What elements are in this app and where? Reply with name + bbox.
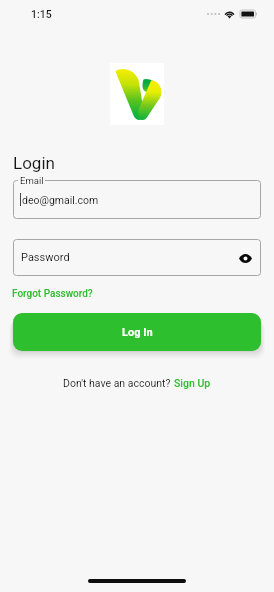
staticText: Login <box>13 153 55 173</box>
button[interactable]: Sign Up <box>174 377 211 389</box>
staticText: 1:15 <box>31 8 52 20</box>
button[interactable]: Email <box>13 180 261 219</box>
staticText: Password <box>21 251 70 264</box>
button[interactable]: Forgot Password? <box>12 288 93 300</box>
staticText: Don't have an account? <box>63 377 174 389</box>
staticText: Email <box>20 175 44 186</box>
button[interactable]: Show password <box>235 248 255 268</box>
staticText: deo@gmail.com <box>22 194 99 206</box>
staticText: Log In <box>122 326 153 339</box>
button[interactable]: Password <box>13 239 261 276</box>
button[interactable]: Log In <box>13 313 261 351</box>
